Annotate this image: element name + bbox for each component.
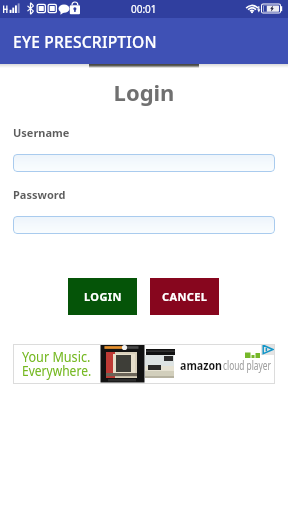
staticText: Everywhere. bbox=[22, 361, 92, 380]
button[interactable]: Your Music. bbox=[13, 344, 275, 384]
staticText: Your Music. bbox=[22, 347, 90, 366]
staticText: CANCEL bbox=[162, 289, 208, 304]
staticText: Login bbox=[0, 77, 288, 107]
staticText: cloud player bbox=[223, 356, 271, 374]
staticText: amazon bbox=[180, 356, 223, 374]
staticText: LOGIN bbox=[84, 289, 122, 304]
button[interactable]: CANCEL bbox=[150, 278, 219, 315]
staticText: Password bbox=[13, 187, 66, 202]
staticText: Username bbox=[13, 125, 70, 140]
staticText: EYE PRESCRIPTION bbox=[13, 31, 157, 52]
button[interactable] bbox=[13, 154, 275, 172]
button[interactable]: LOGIN bbox=[68, 278, 137, 315]
button[interactable] bbox=[13, 216, 275, 234]
staticText: 00:01 bbox=[131, 2, 157, 16]
